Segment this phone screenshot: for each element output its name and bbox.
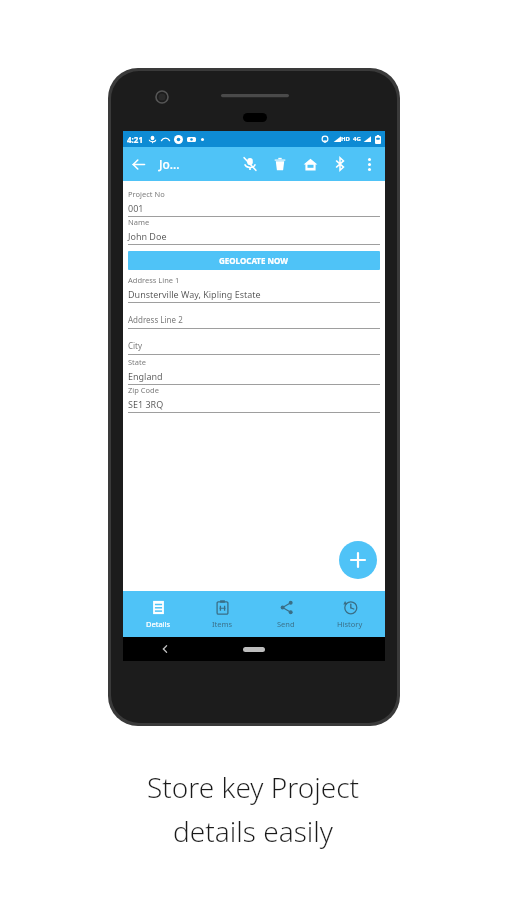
button[interactable]: More options	[355, 150, 383, 178]
button[interactable]: Home	[295, 149, 325, 179]
staticText: HD	[341, 135, 350, 143]
button[interactable]: History	[321, 591, 379, 637]
button[interactable]: Address Line 2	[128, 314, 380, 329]
staticText: Name	[128, 217, 150, 227]
button[interactable]: State	[128, 357, 380, 385]
button[interactable]: Delete	[265, 149, 295, 179]
staticText: Dunsterville Way, Kipling Estate	[128, 288, 261, 300]
button[interactable]: Mute microphone	[235, 149, 265, 179]
button[interactable]: Zip Code	[128, 385, 380, 413]
button[interactable]: Send	[257, 591, 315, 637]
staticText: Details	[146, 619, 171, 629]
staticText: Items	[212, 619, 233, 629]
staticText: details easily	[173, 812, 333, 850]
button[interactable]: Items	[193, 591, 251, 637]
staticText: State	[128, 357, 146, 367]
button[interactable]: Add	[339, 541, 377, 579]
button[interactable]: Back	[157, 641, 173, 657]
staticText: 001	[128, 202, 144, 214]
button[interactable]: Details	[129, 591, 187, 637]
staticText: City	[128, 340, 143, 351]
staticText: England	[128, 370, 163, 382]
staticText: History	[337, 619, 363, 629]
staticText: GEOLOCATE NOW	[219, 255, 289, 266]
button[interactable]: GEOLOCATE NOW	[128, 251, 380, 270]
button[interactable]: Bluetooth	[325, 149, 355, 179]
staticText: Address Line 2	[128, 314, 183, 325]
staticText: Project No	[128, 189, 165, 199]
button[interactable]: Jo...	[159, 156, 180, 172]
staticText: Store key Project	[147, 768, 359, 806]
staticText: John Doe	[128, 230, 167, 242]
staticText: 4G	[353, 135, 361, 143]
staticText: Send	[277, 619, 295, 629]
staticText: SE1 3RQ	[128, 398, 164, 410]
button[interactable]: Back	[123, 149, 153, 179]
staticText: 4:21	[127, 134, 143, 145]
staticText: Zip Code	[128, 385, 159, 395]
button[interactable]: Project No	[128, 189, 380, 217]
button[interactable]: City	[128, 340, 380, 355]
button[interactable]: Address Line 1	[128, 275, 380, 303]
button[interactable]: Home	[243, 647, 265, 652]
button[interactable]: Name	[128, 217, 380, 245]
staticText: Address Line 1	[128, 275, 180, 285]
